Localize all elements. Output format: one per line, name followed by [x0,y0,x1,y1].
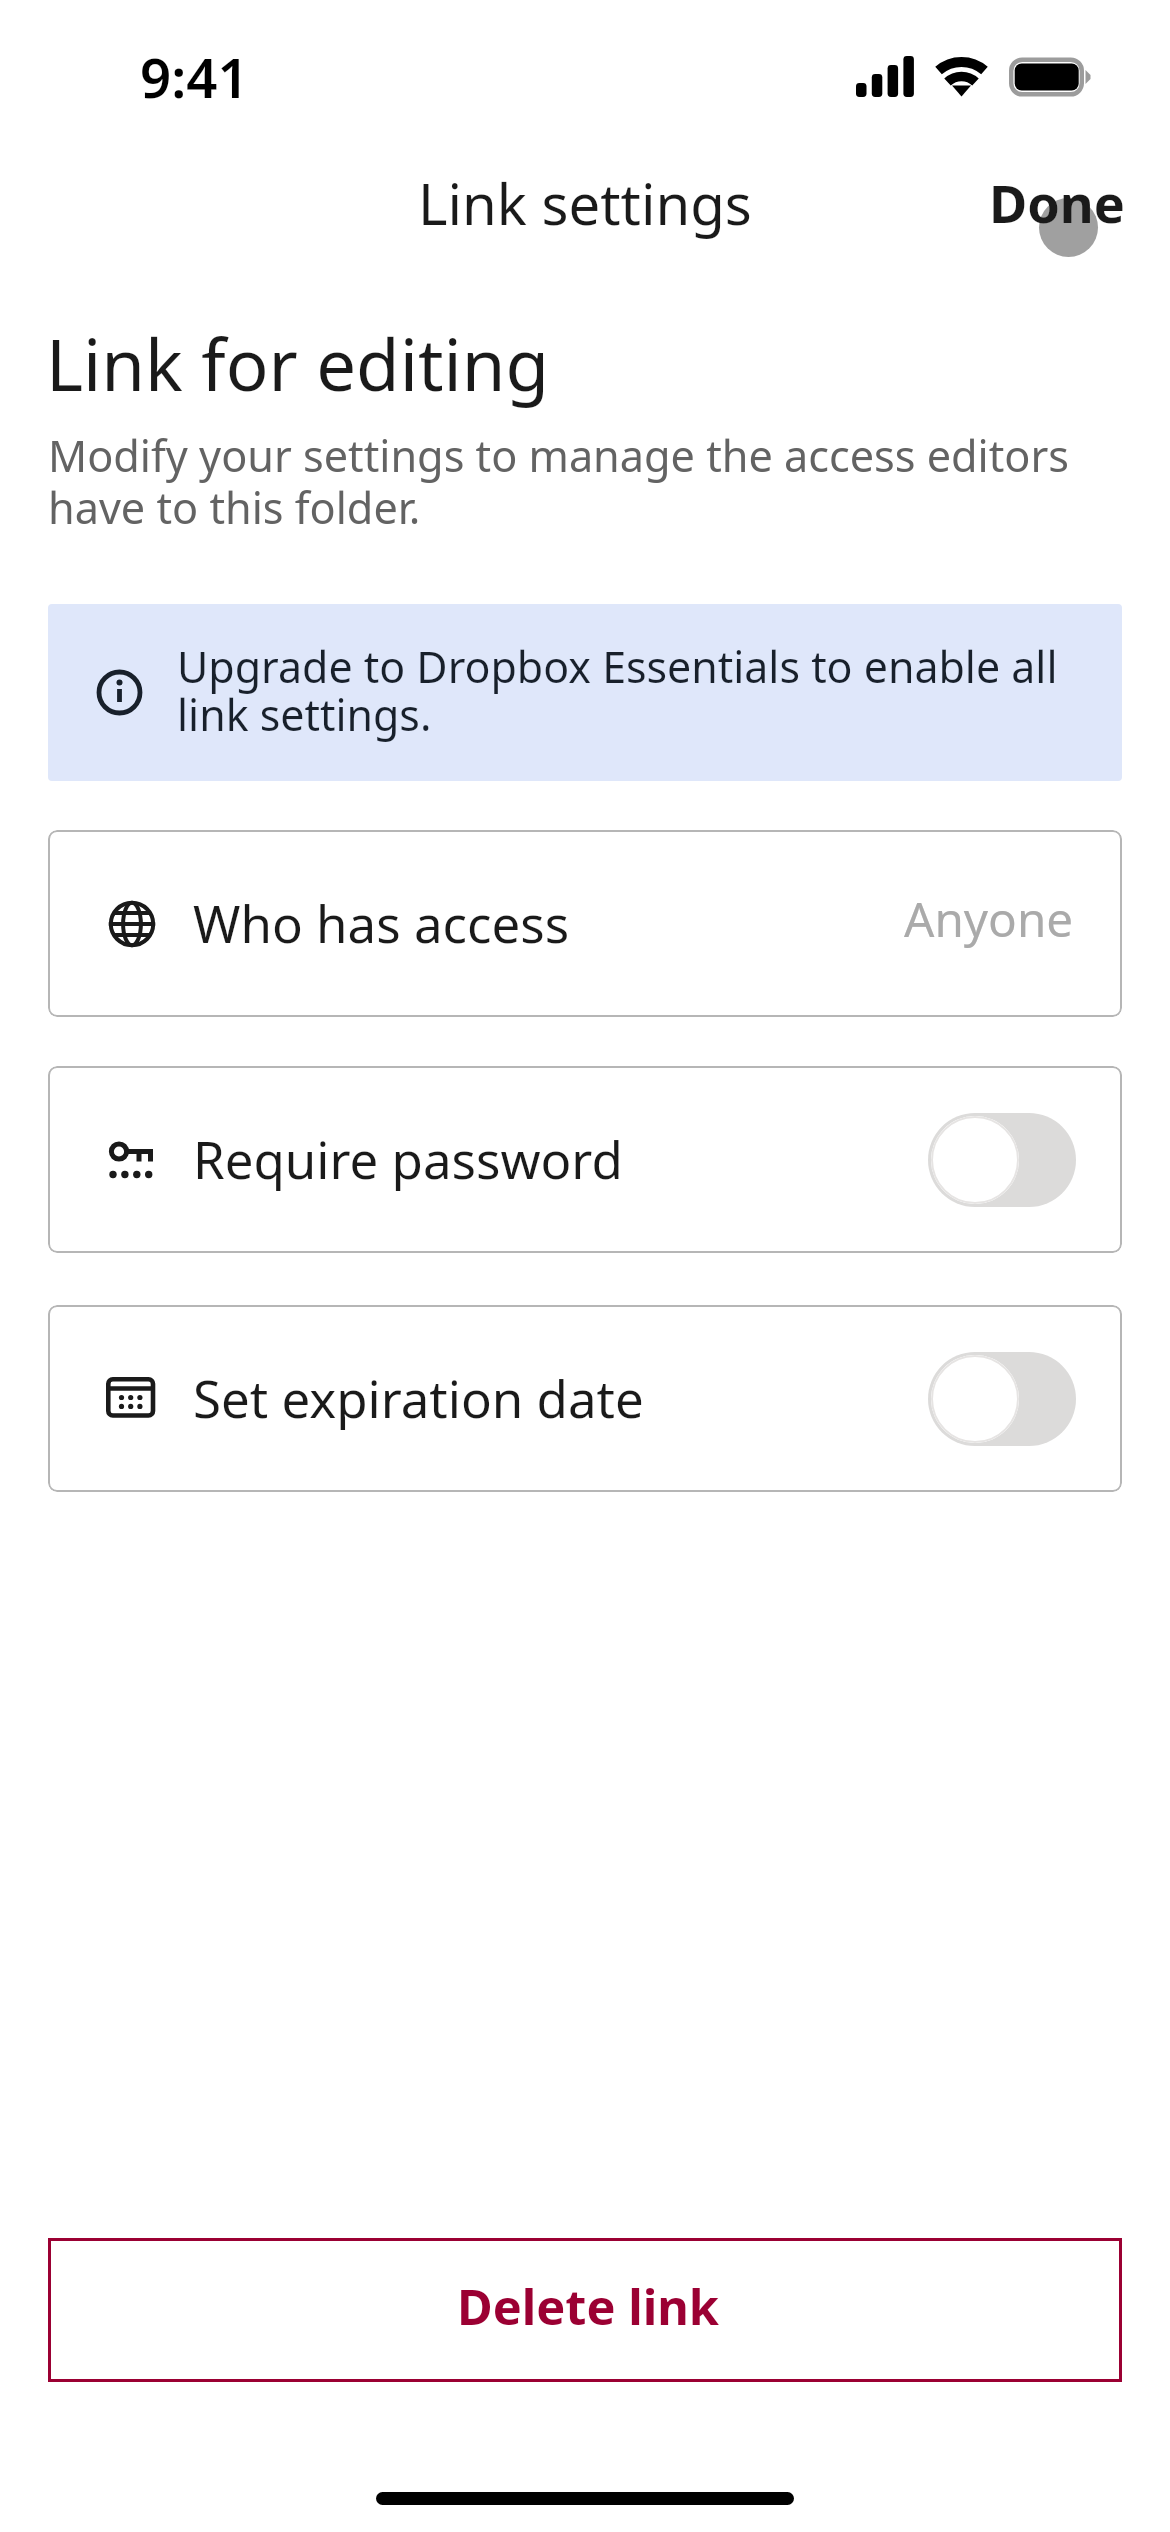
button[interactable]: Delete link [48,2238,1122,2382]
staticText: Modify your settings to manage the acces… [48,426,1088,536]
staticText: Anyone [904,886,1074,951]
button[interactable]: Set expiration date [48,1305,1122,1492]
staticText: Who has access [193,888,570,957]
button[interactable]: Who has access [48,830,1122,1017]
staticText: Link for editing [46,315,550,411]
staticText: Delete link [457,2273,720,2339]
staticText: Done [989,167,1125,238]
button[interactable]: Require password [48,1066,1122,1253]
button[interactable]: Require password [928,1113,1076,1207]
staticText: Require password [193,1124,623,1193]
staticText: Link settings [418,165,752,242]
staticText: Set expiration date [193,1363,644,1432]
staticText: Upgrade to Dropbox Essentials to enable … [177,637,1077,744]
staticText: 9:41 [140,40,249,114]
button[interactable]: Done [962,150,1154,268]
button[interactable]: Set expiration date [928,1352,1076,1446]
